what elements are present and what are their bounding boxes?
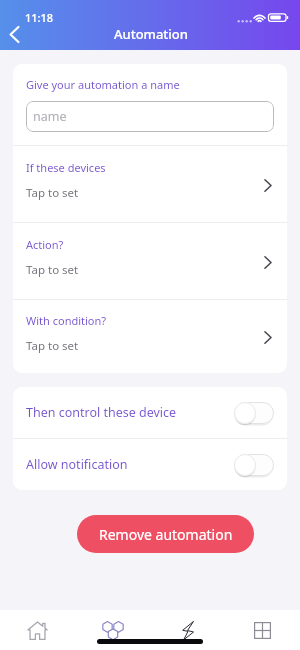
button[interactable]: Devices bbox=[75, 610, 150, 650]
staticText: Tap to set bbox=[26, 185, 79, 201]
staticText: Give your automation a name bbox=[26, 77, 180, 92]
button[interactable]: Remove automation bbox=[77, 515, 254, 553]
staticText: Automation bbox=[114, 25, 188, 43]
staticText: With condition? bbox=[26, 313, 107, 328]
button[interactable]: With condition? bbox=[13, 300, 287, 373]
staticText: If these devices bbox=[26, 160, 106, 175]
staticText: Tap to set bbox=[26, 338, 79, 354]
button[interactable]: Action? bbox=[13, 223, 287, 299]
staticText: Allow notification bbox=[26, 456, 234, 473]
staticText: Action? bbox=[26, 237, 64, 252]
button[interactable]: Then control these device bbox=[13, 387, 287, 438]
staticText: Remove automation bbox=[99, 525, 233, 544]
staticText: name bbox=[33, 108, 67, 125]
button[interactable]: Allow notification bbox=[13, 439, 287, 490]
staticText: 11:18 bbox=[25, 10, 54, 25]
button[interactable]: If these devices bbox=[13, 146, 287, 222]
button[interactable]: Automation bbox=[150, 610, 225, 650]
button[interactable]: Home bbox=[0, 610, 75, 650]
button[interactable]: Grid bbox=[225, 610, 300, 650]
staticText: Then control these device bbox=[26, 404, 234, 421]
staticText: Tap to set bbox=[26, 262, 79, 278]
button[interactable]: name bbox=[26, 101, 274, 132]
button[interactable]: Back bbox=[1, 21, 27, 47]
